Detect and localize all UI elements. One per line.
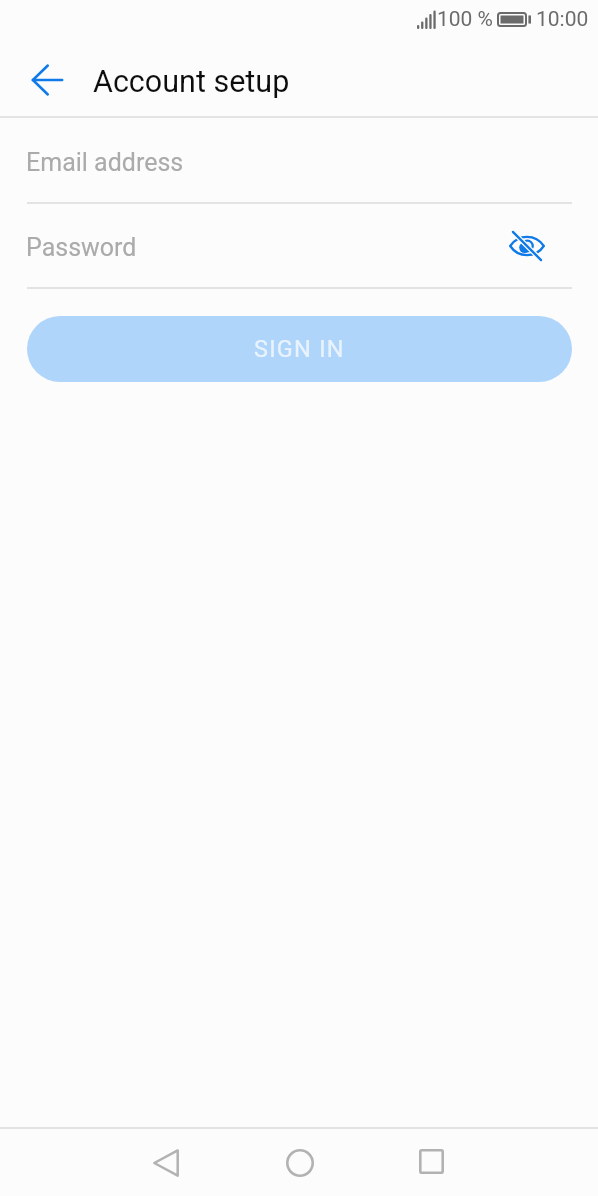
staticText: Email address — [26, 148, 184, 177]
staticText: 10:00 — [536, 7, 589, 32]
button[interactable]: Home — [276, 1139, 324, 1187]
staticText: SIGN IN — [254, 335, 345, 363]
staticText: 100 % — [437, 7, 493, 32]
button[interactable]: SIGN IN — [27, 316, 572, 382]
staticText: Password — [26, 233, 137, 262]
staticText: Account setup — [93, 64, 290, 100]
button[interactable]: Password — [27, 225, 572, 288]
button[interactable]: Email address — [27, 140, 572, 203]
button[interactable]: Show password — [505, 224, 549, 268]
button[interactable]: Recent apps — [407, 1139, 455, 1187]
button[interactable]: Back — [142, 1139, 190, 1187]
button[interactable]: Back — [24, 56, 72, 104]
